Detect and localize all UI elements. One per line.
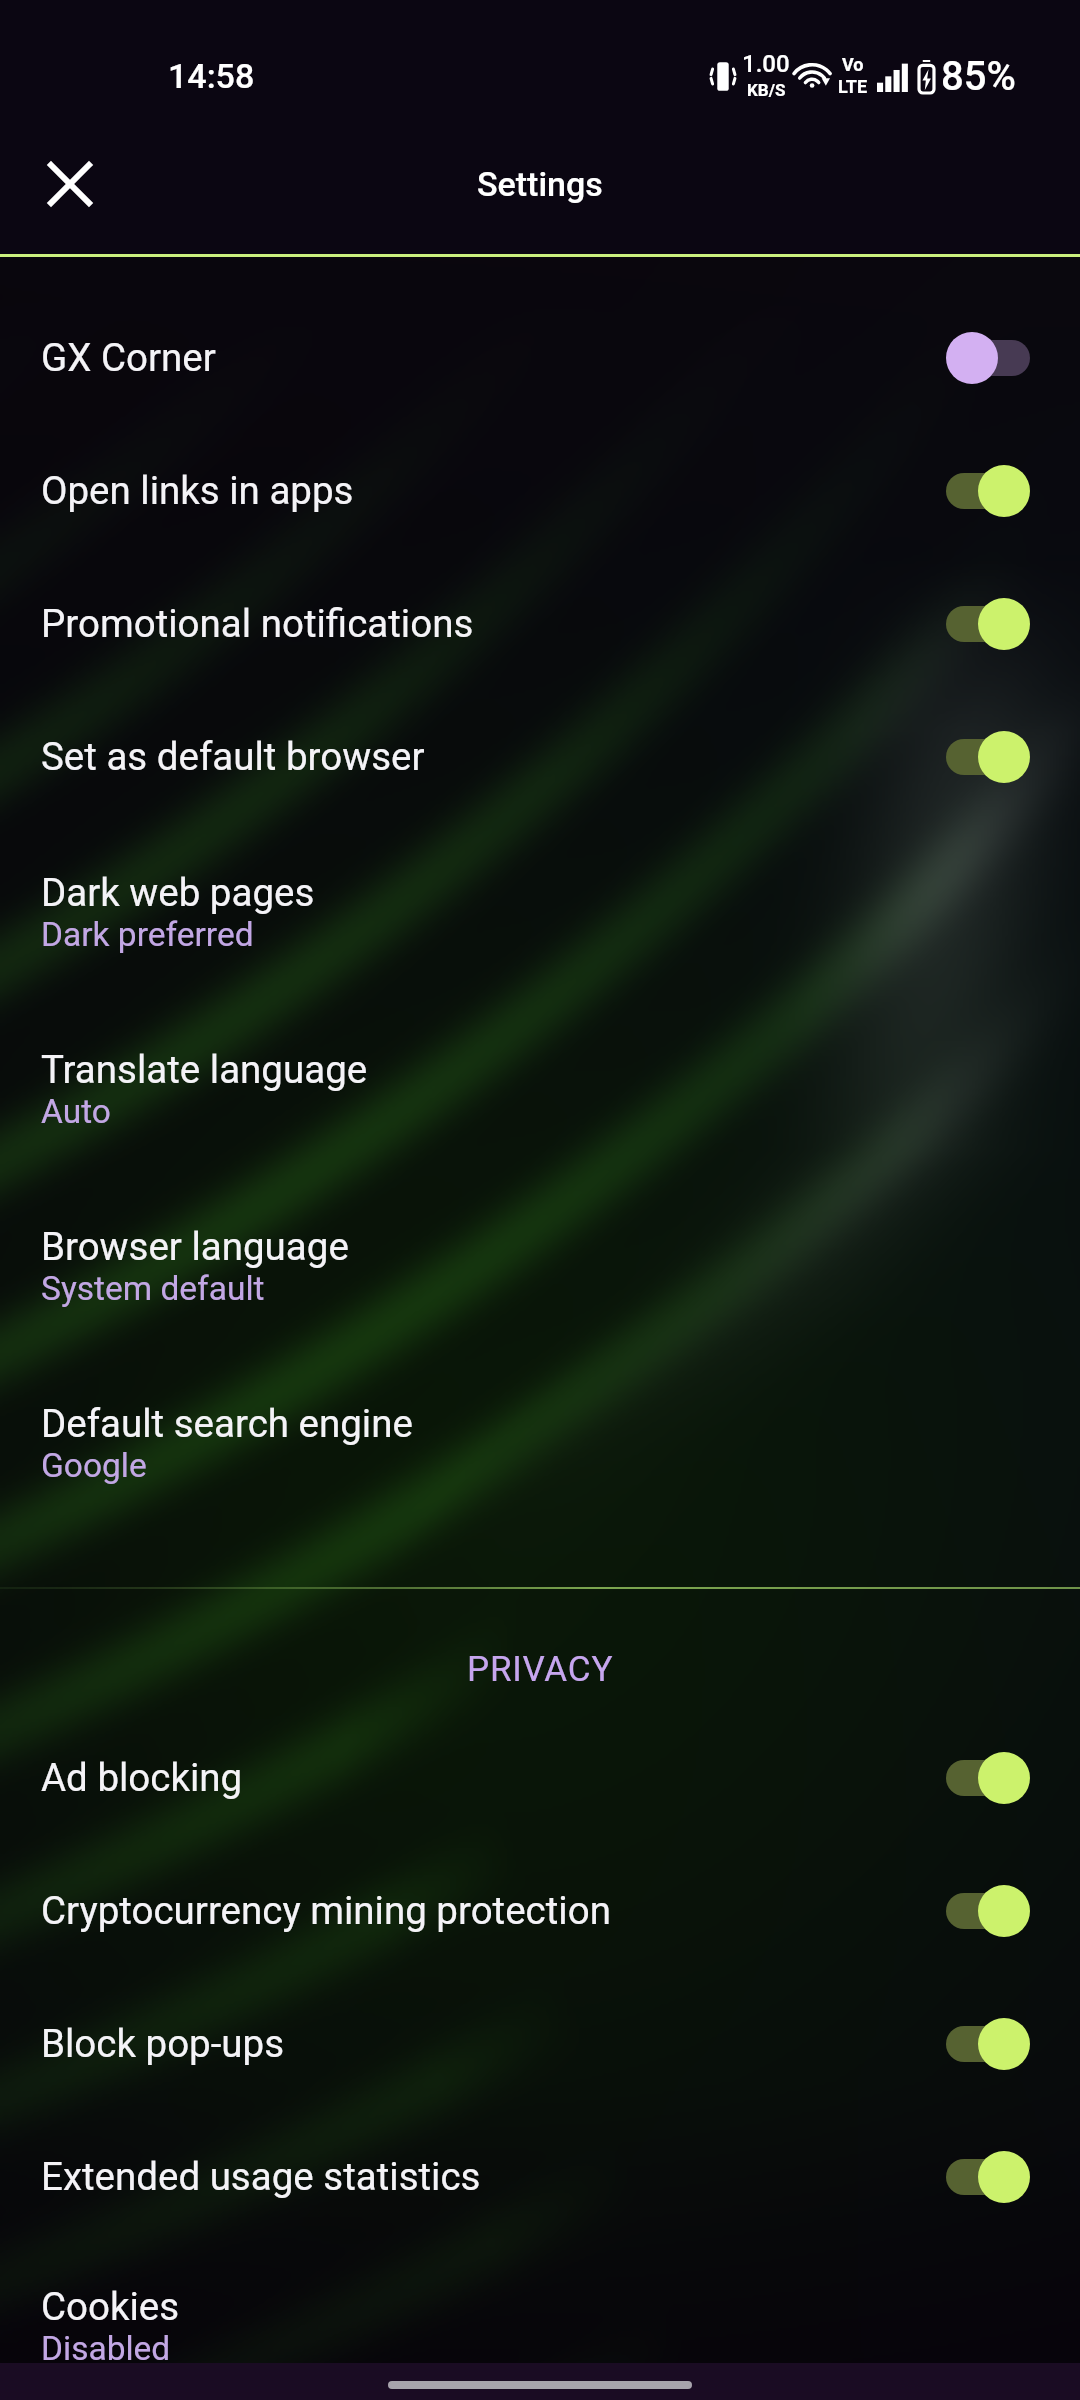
- staticText: GX Corner: [41, 335, 216, 380]
- staticText: Google: [41, 1446, 147, 1485]
- button[interactable]: GX Corner: [0, 291, 1080, 424]
- staticText: Ad blocking: [41, 1755, 243, 1800]
- button[interactable]: Open links in apps: [0, 424, 1080, 557]
- staticText: Cryptocurrency mining protection: [41, 1888, 611, 1933]
- staticText: 14:58: [168, 56, 255, 96]
- staticText: Block pop-ups: [41, 2021, 285, 2066]
- button[interactable]: Close: [22, 136, 118, 232]
- button[interactable]: Dark web pages: [0, 823, 1080, 1000]
- staticText: Disabled: [41, 2329, 171, 2368]
- staticText: Translate language: [41, 1047, 368, 1092]
- button[interactable]: Browser language: [0, 1177, 1080, 1354]
- staticText: Vo: [842, 54, 864, 75]
- staticText: Auto: [41, 1092, 111, 1131]
- staticText: Set as default browser: [41, 734, 425, 779]
- staticText: 85%: [941, 53, 1016, 100]
- staticText: Dark web pages: [41, 870, 315, 915]
- staticText: System default: [41, 1269, 265, 1308]
- button[interactable]: Set as default browser: [0, 690, 1080, 823]
- button[interactable]: Ad blocking: [0, 1711, 1080, 1844]
- staticText: Browser language: [41, 1224, 349, 1269]
- staticText: Cookies: [41, 2284, 180, 2329]
- staticText: KB/S: [747, 80, 786, 100]
- staticText: Default search engine: [41, 1401, 413, 1446]
- button[interactable]: Cookies: [0, 2252, 1080, 2400]
- staticText: 1.00: [742, 50, 790, 78]
- button[interactable]: Default search engine: [0, 1354, 1080, 1531]
- staticText: LTE: [838, 76, 868, 97]
- staticText: Dark preferred: [41, 915, 254, 954]
- staticText: Settings: [477, 164, 603, 204]
- button[interactable]: Translate language: [0, 1000, 1080, 1177]
- button[interactable]: Cryptocurrency mining protection: [0, 1844, 1080, 1977]
- button[interactable]: Promotional notifications: [0, 557, 1080, 690]
- staticText: Open links in apps: [41, 468, 354, 513]
- button[interactable]: Extended usage statistics: [0, 2110, 1080, 2243]
- staticText: Extended usage statistics: [41, 2154, 481, 2199]
- staticText: Promotional notifications: [41, 601, 474, 646]
- button[interactable]: Block pop-ups: [0, 1977, 1080, 2110]
- staticText: PRIVACY: [467, 1649, 614, 1690]
